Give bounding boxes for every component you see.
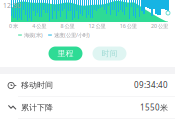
button[interactable]: 时间 <box>92 46 126 60</box>
staticText: 16 公里 <box>120 22 137 30</box>
staticText: 20 公里 <box>151 22 168 30</box>
staticText: 海拔(米) <box>24 31 43 39</box>
button[interactable]: 累计下降 <box>0 96 175 118</box>
button[interactable]: 里程 <box>48 46 82 60</box>
staticText: 0 米 <box>9 22 18 30</box>
button[interactable]: 移动时间 <box>0 74 175 96</box>
staticText: 12 公里 <box>89 22 106 30</box>
staticText: 12:30 <box>3 1 21 10</box>
staticText: 4 公里 <box>32 22 46 30</box>
staticText: 8 公里 <box>60 22 74 30</box>
staticText: 09:34:40 <box>134 80 168 90</box>
staticText: 里程 <box>57 49 73 58</box>
staticText: 时间 <box>101 49 117 58</box>
staticText: 1550米 <box>140 102 168 113</box>
staticText: 速度(公里/小时) <box>54 31 90 39</box>
staticText: 累计下降 <box>21 103 53 112</box>
staticText: 移动时间 <box>21 80 53 90</box>
